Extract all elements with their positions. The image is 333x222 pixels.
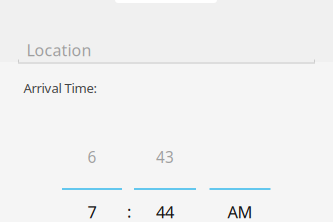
button[interactable]: 43 <box>128 150 202 219</box>
staticText: 7 <box>87 201 96 222</box>
button[interactable]: 6 <box>55 150 129 219</box>
staticText: AM <box>227 201 252 222</box>
staticText: Location <box>26 39 91 61</box>
button[interactable] <box>203 150 277 219</box>
staticText: 44 <box>156 201 174 222</box>
staticText: : <box>127 200 131 222</box>
staticText: 43 <box>156 147 174 167</box>
staticText: 6 <box>87 147 96 167</box>
staticText: Arrival Time: <box>23 79 97 97</box>
